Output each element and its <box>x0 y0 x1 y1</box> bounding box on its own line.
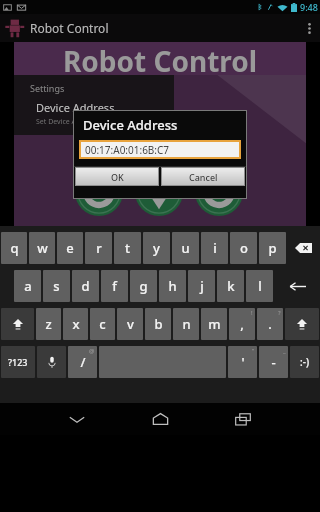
button[interactable]: Recent apps <box>215 403 271 435</box>
button[interactable]: Back <box>49 403 105 435</box>
staticText: j <box>200 277 204 295</box>
staticText: :-) <box>300 355 310 369</box>
button[interactable]: b <box>145 308 171 340</box>
button[interactable]: 00:17:A0:01:6B:C7 <box>79 140 241 159</box>
staticText: 00:17:A0:01:6B:C7 <box>85 143 170 157</box>
button[interactable]: :-) <box>290 346 319 378</box>
staticText: w <box>37 239 48 257</box>
button[interactable]: - <box>259 346 288 378</box>
button[interactable]: i <box>201 232 228 264</box>
button[interactable]: Enter <box>274 269 320 303</box>
button[interactable]: Delete <box>287 231 320 265</box>
staticText: r <box>96 239 102 257</box>
staticText: q <box>10 239 19 257</box>
staticText: m <box>208 315 221 333</box>
staticText: Set Device Address <box>36 117 99 127</box>
button[interactable]: v <box>117 308 143 340</box>
staticText: b <box>154 315 163 333</box>
button[interactable]: . <box>257 308 283 340</box>
staticText: a <box>24 277 32 295</box>
button[interactable]: , <box>229 308 255 340</box>
staticText: Device Address <box>83 116 178 134</box>
staticText: Robot Control <box>63 42 258 75</box>
button[interactable]: ?123 <box>1 346 35 378</box>
button[interactable]: c <box>90 308 115 340</box>
button[interactable]: z <box>36 308 61 340</box>
button[interactable]: Rotate right <box>195 168 243 216</box>
button[interactable]: d <box>72 270 99 302</box>
button[interactable]: x <box>63 308 88 340</box>
staticText: d <box>81 277 90 295</box>
button[interactable]: m <box>201 308 227 340</box>
staticText: h <box>168 277 177 295</box>
staticText: ' <box>241 353 245 371</box>
button[interactable]: Reverse <box>135 168 183 216</box>
button[interactable]: t <box>114 232 141 264</box>
staticText: t <box>125 239 130 257</box>
staticText: _ <box>283 347 286 355</box>
button[interactable]: Rotate left <box>75 168 123 216</box>
staticText: x <box>72 315 80 333</box>
button[interactable]: r <box>85 232 112 264</box>
button[interactable]: Turn <box>195 116 243 164</box>
button[interactable]: k <box>217 270 244 302</box>
staticText: / <box>80 353 86 371</box>
staticText: z <box>45 315 52 333</box>
staticText: n <box>182 315 191 333</box>
button[interactable]: Cancel <box>161 167 245 186</box>
staticText: s <box>53 277 60 295</box>
button[interactable]: Settings <box>14 75 174 135</box>
staticText: p <box>268 239 277 257</box>
button[interactable]: g <box>130 270 157 302</box>
staticText: ? <box>278 309 281 317</box>
staticText: v <box>127 315 134 333</box>
button[interactable]: q <box>1 232 27 264</box>
button[interactable]: s <box>43 270 70 302</box>
button[interactable]: Home <box>132 403 188 435</box>
staticText: Device Address <box>36 100 115 115</box>
button[interactable]: h <box>159 270 186 302</box>
staticText: f <box>112 277 117 295</box>
staticText: c <box>99 315 106 333</box>
staticText: g <box>139 277 148 295</box>
staticText: @ <box>89 347 95 355</box>
button[interactable]: Stop <box>135 116 183 164</box>
button[interactable]: u <box>172 232 199 264</box>
staticText: Cancel <box>189 171 218 183</box>
button[interactable]: ' <box>228 346 257 378</box>
button[interactable]: f <box>101 270 128 302</box>
button[interactable]: Shift <box>285 308 319 340</box>
button[interactable]: a <box>14 270 41 302</box>
staticText: i <box>213 239 217 257</box>
staticText: Settings <box>30 82 65 94</box>
button[interactable]: Shift <box>1 308 34 340</box>
staticText: Robot Control <box>30 20 109 36</box>
button[interactable]: w <box>29 232 55 264</box>
staticText: , <box>240 315 244 333</box>
button[interactable]: Voice input <box>37 346 66 378</box>
button[interactable]: j <box>188 270 215 302</box>
staticText: y <box>153 239 160 257</box>
button[interactable]: More options <box>298 14 320 42</box>
button[interactable]: Turn <box>75 116 123 164</box>
button[interactable]: Robot Control <box>0 14 320 42</box>
staticText: e <box>66 239 74 257</box>
button[interactable]: l <box>246 270 273 302</box>
staticText: u <box>181 239 190 257</box>
staticText: ?123 <box>8 356 28 368</box>
staticText: . <box>268 315 272 333</box>
button[interactable]: OK <box>75 167 159 186</box>
button[interactable]: p <box>259 232 286 264</box>
staticText: ! <box>251 309 253 317</box>
staticText: k <box>227 277 235 295</box>
button[interactable]: / <box>68 346 97 378</box>
button[interactable]: n <box>173 308 199 340</box>
button[interactable]: o <box>230 232 257 264</box>
staticText: - <box>271 353 276 371</box>
staticText: OK <box>111 171 124 183</box>
staticText: 9:48 <box>300 1 318 13</box>
button[interactable]: y <box>143 232 170 264</box>
staticText: " <box>252 347 255 355</box>
button[interactable]: e <box>57 232 83 264</box>
